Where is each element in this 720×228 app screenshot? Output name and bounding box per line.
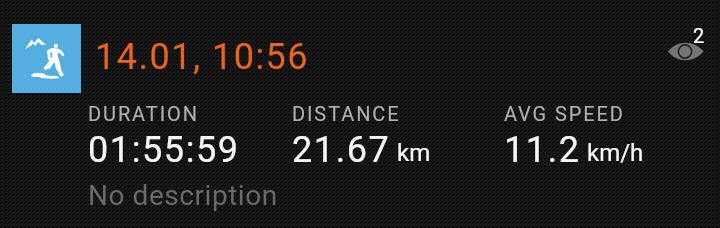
button[interactable]: 14.01, 10:56 bbox=[0, 0, 720, 228]
button[interactable]: Views: 2 bbox=[660, 22, 712, 64]
staticText: No description bbox=[88, 179, 278, 212]
staticText: km/h bbox=[587, 139, 644, 167]
staticText: DISTANCE bbox=[292, 102, 401, 125]
staticText: 21.67 bbox=[292, 129, 391, 171]
staticText: 2 bbox=[693, 24, 705, 47]
staticText: 14.01, 10:56 bbox=[95, 36, 310, 78]
staticText: km bbox=[397, 139, 431, 167]
staticText: DURATION bbox=[88, 102, 199, 125]
staticText: 01:55:59 bbox=[88, 129, 240, 171]
staticText: AVG SPEED bbox=[504, 102, 625, 125]
staticText: 11.2 bbox=[504, 129, 581, 171]
